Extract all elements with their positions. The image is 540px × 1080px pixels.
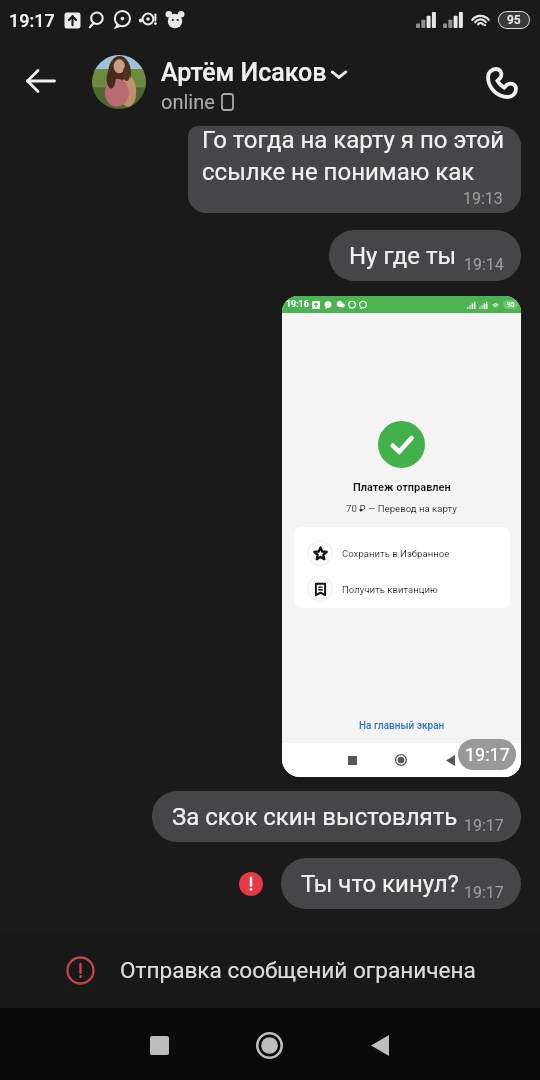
staticText: 95 [507, 13, 521, 27]
button[interactable]: Call [474, 55, 530, 111]
staticText: Ты что кинул? [301, 870, 459, 898]
staticText: На главный экран [359, 720, 445, 732]
button[interactable]: Home [239, 1015, 299, 1075]
button[interactable]: Back [441, 751, 459, 769]
staticText: За скок скин выстовлять [172, 803, 458, 831]
staticText: 19:17 [464, 883, 504, 902]
button[interactable]: Recents [129, 1015, 189, 1075]
button[interactable]: Ты что кинул? [281, 858, 521, 909]
staticText: Платеж отправлен [353, 481, 451, 494]
button[interactable]: Message not delivered [239, 872, 263, 896]
button[interactable]: Back [13, 53, 69, 109]
staticText: Артём Исаков [161, 58, 327, 87]
staticText: 19:16 [286, 299, 309, 310]
staticText: online [161, 90, 215, 113]
button[interactable]: Profile photo [92, 55, 146, 109]
staticText: Сохранить в Избранное [342, 548, 450, 559]
button[interactable]: Сохранить в Избранное [294, 535, 510, 571]
staticText: Получить квитанцию [342, 584, 438, 595]
button[interactable]: Получить квитанцию [294, 571, 510, 607]
staticText: 19:13 [463, 189, 503, 208]
button[interactable]: Ну где ты [329, 230, 521, 281]
button[interactable]: Home [392, 751, 410, 769]
staticText: Отправка сообщений ограничена [120, 957, 476, 983]
staticText: 70 ₽ — Перевод на карту [346, 503, 457, 514]
staticText: Го тогда на карту я по этой ссылке не по… [202, 126, 505, 185]
staticText: 19:17 [464, 816, 504, 835]
button[interactable]: На главный экран [351, 717, 453, 735]
button[interactable]: За скок скин выстовлять [152, 791, 521, 842]
staticText: 95 [507, 301, 515, 309]
staticText: Ну где ты [349, 242, 457, 270]
staticText: 19:17 [9, 10, 55, 31]
button[interactable]: Recents [343, 751, 361, 769]
button[interactable]: Back [350, 1015, 410, 1075]
button[interactable]: 19:16 [282, 296, 521, 777]
staticText: 19:14 [464, 255, 504, 274]
staticText: 19:17 [465, 744, 510, 765]
button[interactable]: Го тогда на карту я по этой ссылке не по… [188, 126, 521, 213]
button[interactable]: Отправка сообщений ограничена [0, 932, 540, 1008]
